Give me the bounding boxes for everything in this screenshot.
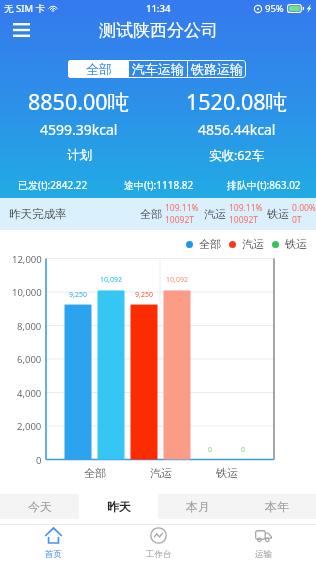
button[interactable]: 本月: [158, 494, 237, 519]
staticText: 铁运: [285, 237, 307, 251]
staticText: 12,000: [12, 253, 42, 266]
staticText: 95%: [265, 2, 284, 15]
staticText: 本年: [265, 499, 289, 514]
staticText: 10092T: [229, 214, 259, 226]
button[interactable]: 首页: [0, 525, 106, 562]
staticText: 4856.44kcal: [198, 120, 276, 139]
staticText: 0T: [292, 214, 302, 226]
staticText: 4,000: [17, 387, 42, 400]
staticText: 今天: [28, 499, 52, 514]
staticText: 0: [241, 445, 246, 455]
staticText: 0.00%: [292, 202, 316, 214]
staticText: 铁路运输: [191, 61, 243, 77]
staticText: 10,092: [166, 275, 188, 285]
staticText: 工作台: [146, 549, 172, 560]
staticText: 11:34: [146, 2, 171, 15]
staticText: 已发(t):2842.22: [18, 178, 88, 192]
button[interactable]: 铁路运输: [188, 60, 246, 78]
staticText: 10092T: [165, 214, 195, 226]
button[interactable]: 汽车运输: [129, 60, 187, 78]
staticText: 109.11%: [229, 202, 263, 214]
staticText: 0: [36, 454, 42, 467]
staticText: 实收:62车: [209, 147, 265, 164]
staticText: 109.11%: [165, 202, 199, 214]
staticText: 汽运: [242, 237, 264, 251]
staticText: 4599.39kcal: [40, 120, 118, 139]
staticText: 途中(t):1118.82: [124, 178, 194, 192]
button[interactable]: 工作台: [106, 525, 211, 562]
staticText: 本月: [186, 499, 210, 514]
staticText: 全部: [86, 61, 112, 77]
staticText: 全部: [199, 237, 221, 251]
staticText: 汽运: [150, 466, 172, 480]
staticText: 全部: [84, 466, 106, 480]
button[interactable]: Menu: [8, 17, 34, 43]
staticText: 首页: [45, 549, 62, 560]
button[interactable]: 昨天: [79, 494, 158, 519]
button[interactable]: 全部: [68, 60, 129, 78]
staticText: 汽运: [204, 207, 226, 221]
staticText: 2,000: [17, 420, 42, 433]
staticText: 铁运: [216, 466, 238, 480]
staticText: 1520.08吨: [186, 87, 288, 116]
staticText: 0: [208, 445, 213, 455]
staticText: 10,000: [12, 286, 42, 299]
staticText: 汽车运输: [132, 61, 184, 77]
staticText: 昨天完成率: [9, 207, 67, 221]
staticText: 6,000: [17, 353, 42, 366]
staticText: 运输: [255, 549, 272, 560]
staticText: 8850.00吨: [28, 87, 130, 116]
staticText: 铁运: [267, 207, 289, 221]
staticText: 昨天: [107, 499, 131, 514]
staticText: 10,092: [100, 275, 122, 285]
staticText: 8,000: [17, 320, 42, 333]
staticText: 计划: [67, 147, 92, 163]
staticText: 9,250: [69, 290, 87, 300]
button[interactable]: 今天: [0, 494, 79, 519]
staticText: 测试陕西分公司: [99, 20, 218, 41]
button[interactable]: 本年: [237, 494, 316, 519]
staticText: 全部: [140, 207, 162, 221]
button[interactable]: 运输: [211, 525, 316, 562]
staticText: 9,250: [135, 290, 153, 300]
staticText: 无 SIM 卡: [4, 2, 45, 15]
staticText: 排队中(t):863.02: [227, 178, 301, 192]
